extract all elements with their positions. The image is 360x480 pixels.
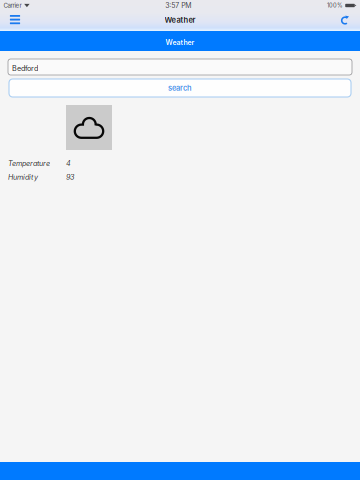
button[interactable]: Refresh xyxy=(334,10,356,32)
staticText: 100% xyxy=(327,2,343,9)
button[interactable]: Menu xyxy=(4,10,26,32)
button[interactable]: search xyxy=(0,79,360,97)
staticText: 93 xyxy=(66,173,74,181)
staticText: search xyxy=(168,83,192,92)
staticText: Humidity xyxy=(8,173,38,181)
staticText: Carrier xyxy=(4,2,22,9)
staticText: Weather xyxy=(164,15,195,25)
staticText: Weather xyxy=(165,38,194,47)
staticText: Bedford xyxy=(12,64,38,73)
staticText: 3:57 PM xyxy=(165,1,191,10)
staticText: Temperature xyxy=(8,159,50,168)
staticText: 4 xyxy=(66,159,71,168)
